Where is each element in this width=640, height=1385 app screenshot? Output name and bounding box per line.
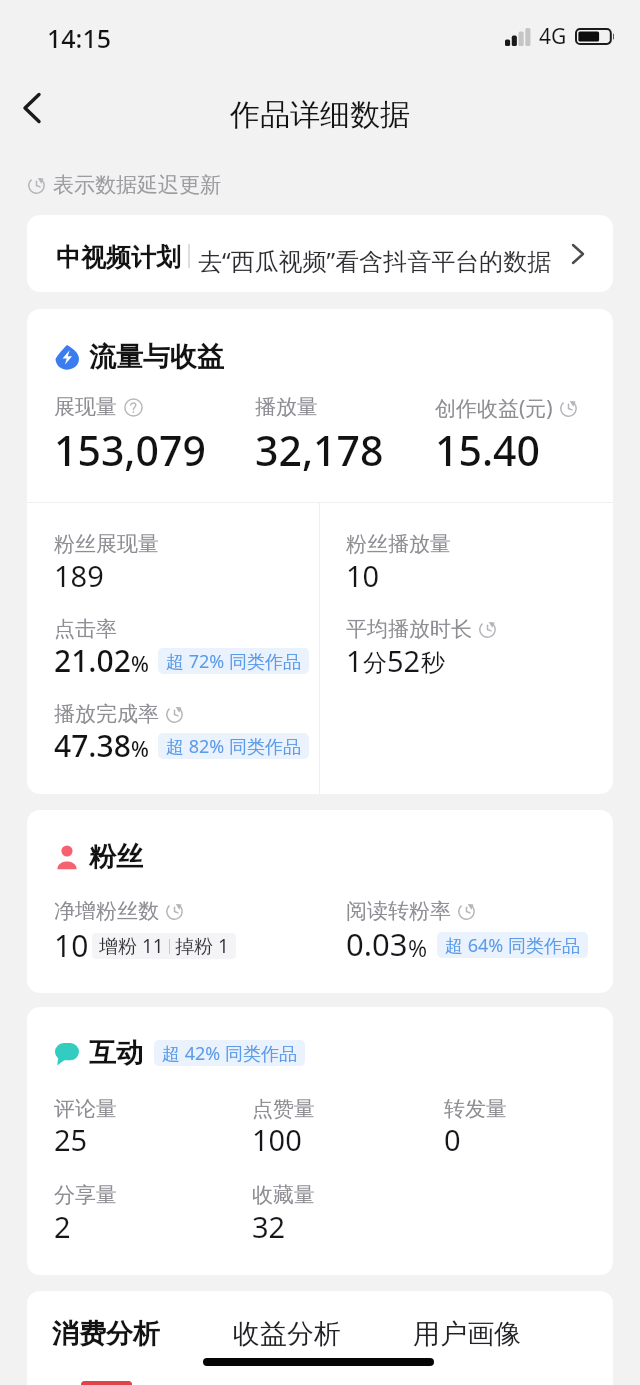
staticText: 粉丝 xyxy=(89,840,143,874)
staticText: 10 xyxy=(346,556,380,595)
staticText: 展现量 xyxy=(54,394,117,420)
button[interactable]: 中视频计划 xyxy=(27,215,613,292)
staticText: 52 xyxy=(387,641,421,680)
staticText: % xyxy=(408,932,428,963)
staticText: 收益分析 xyxy=(233,1317,341,1351)
staticText: % xyxy=(131,650,149,679)
staticText: 4G xyxy=(539,22,567,51)
staticText: 32 xyxy=(252,1207,286,1246)
staticText: 收藏量 xyxy=(252,1182,315,1208)
staticText: 15.40 xyxy=(435,422,540,478)
staticText: 平均播放时长 xyxy=(346,616,472,642)
staticText: 分 xyxy=(363,648,387,678)
staticText: 表示数据延迟更新 xyxy=(53,172,221,198)
staticText: 100 xyxy=(252,1120,302,1159)
staticText: 0.03 xyxy=(346,923,408,965)
staticText: 创作收益(元) xyxy=(435,394,553,423)
staticText: 分享量 xyxy=(54,1182,117,1208)
staticText: 47.38 xyxy=(54,725,131,766)
staticText: 互动 xyxy=(89,1036,143,1070)
staticText: 增粉 11 xyxy=(99,933,164,959)
staticText: 评论量 xyxy=(54,1096,117,1122)
staticText: 超 72% 同类作品 xyxy=(166,649,301,674)
staticText: 去“西瓜视频”看含抖音平台的数据 xyxy=(198,244,552,277)
staticText: 153,079 xyxy=(54,422,206,478)
button[interactable]: Back xyxy=(3,79,61,137)
staticText: 超 42% 同类作品 xyxy=(162,1041,297,1066)
staticText: 超 64% 同类作品 xyxy=(445,933,580,958)
staticText: 0 xyxy=(444,1120,461,1159)
staticText: 流量与收益 xyxy=(89,340,224,374)
button[interactable]: 用户画像 xyxy=(387,1301,547,1367)
staticText: 14:15 xyxy=(47,21,112,55)
staticText: 10 xyxy=(54,925,89,966)
staticText: 秒 xyxy=(421,648,445,678)
staticText: 超 82% 同类作品 xyxy=(166,734,301,759)
staticText: % xyxy=(131,735,149,764)
staticText: 转发量 xyxy=(444,1096,507,1122)
staticText: 净增粉丝数 xyxy=(54,898,159,924)
staticText: 点击率 xyxy=(54,616,117,642)
staticText: 粉丝播放量 xyxy=(346,531,451,557)
staticText: 点赞量 xyxy=(252,1096,315,1122)
staticText: 消费分析 xyxy=(52,1317,160,1351)
staticText: 用户画像 xyxy=(413,1317,521,1351)
staticText: 25 xyxy=(54,1120,88,1159)
staticText: 播放量 xyxy=(255,394,318,420)
staticText: 21.02 xyxy=(54,640,131,681)
staticText: 播放完成率 xyxy=(54,701,159,727)
staticText: 粉丝展现量 xyxy=(54,531,159,557)
staticText: 2 xyxy=(54,1207,71,1246)
staticText: 1 xyxy=(346,641,363,680)
staticText: 作品详细数据 xyxy=(230,96,410,134)
staticText: 32,178 xyxy=(255,422,384,478)
button[interactable]: 消费分析 xyxy=(27,1301,186,1367)
staticText: 189 xyxy=(54,556,104,595)
staticText: 阅读转粉率 xyxy=(346,898,451,924)
staticText: 掉粉 1 xyxy=(175,933,229,959)
button[interactable]: 收益分析 xyxy=(207,1301,367,1367)
staticText: 中视频计划 xyxy=(56,242,181,273)
